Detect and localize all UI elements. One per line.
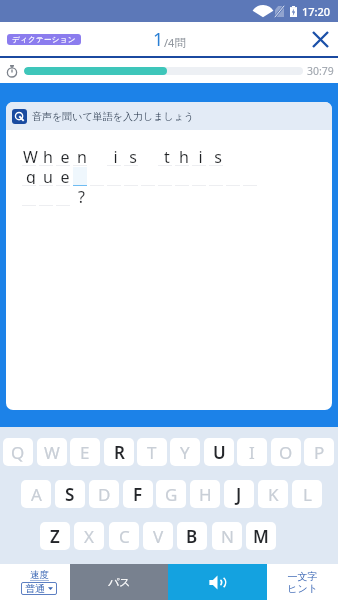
button[interactable]: V	[143, 522, 173, 550]
button[interactable]: Close	[306, 25, 334, 53]
button[interactable]: D	[89, 480, 119, 508]
button[interactable]: Play audio	[168, 564, 267, 600]
staticText: s	[214, 146, 222, 164]
staticText: h	[43, 146, 53, 164]
staticText: Z	[50, 525, 60, 548]
staticText: t	[164, 146, 170, 164]
button[interactable]: B	[177, 522, 207, 550]
staticText: X	[84, 525, 94, 548]
staticText: S	[65, 483, 75, 506]
staticText: F	[133, 483, 143, 506]
staticText: K	[268, 483, 279, 506]
button[interactable]: ディクテーション	[7, 34, 81, 45]
staticText: e	[60, 146, 70, 164]
staticText: /4問	[164, 35, 186, 50]
staticText: N	[221, 525, 234, 548]
button[interactable]: パス	[70, 564, 168, 600]
button[interactable]: E	[70, 438, 100, 466]
staticText: n	[77, 146, 87, 164]
button[interactable]: N	[212, 522, 242, 550]
button[interactable]: A	[21, 480, 51, 508]
staticText: u	[43, 166, 53, 184]
button[interactable]: S	[55, 480, 85, 508]
staticText: W	[23, 146, 38, 164]
staticText: Y	[180, 441, 190, 464]
button[interactable]: C	[109, 522, 139, 550]
button[interactable]: Z	[40, 522, 70, 550]
button[interactable]: G	[156, 480, 186, 508]
button[interactable]: J	[224, 480, 254, 508]
staticText: T	[147, 441, 157, 464]
staticText: J	[236, 483, 242, 506]
staticText: 30:79	[307, 64, 334, 78]
staticText: B	[186, 525, 198, 548]
staticText: W	[44, 441, 60, 464]
staticText: P	[314, 441, 325, 464]
staticText: L	[303, 483, 312, 506]
button[interactable]: X	[74, 522, 104, 550]
staticText: 17:20	[302, 4, 331, 19]
staticText: h	[179, 146, 189, 164]
button[interactable]: W	[37, 438, 67, 466]
staticText: D	[98, 483, 111, 506]
staticText: 速度	[30, 569, 49, 581]
staticText: E	[80, 441, 90, 464]
staticText: s	[129, 146, 137, 164]
staticText: 音声を聞いて単語を入力しましょう	[32, 110, 195, 123]
button[interactable]: R	[104, 438, 134, 466]
staticText: ディクテーション	[12, 35, 76, 44]
button[interactable]: H	[190, 480, 220, 508]
staticText: M	[253, 525, 269, 548]
staticText: Q	[11, 441, 25, 464]
button[interactable]: T	[137, 438, 167, 466]
staticText: U	[213, 441, 226, 464]
staticText: パス	[108, 575, 131, 589]
staticText: q	[26, 166, 36, 184]
button[interactable]: U	[204, 438, 234, 466]
staticText: 一文字 ヒント	[287, 570, 318, 595]
staticText: O	[279, 441, 293, 464]
button[interactable]: 一文字 ヒント	[267, 564, 338, 600]
button[interactable]: M	[246, 522, 276, 550]
button[interactable]: L	[292, 480, 322, 508]
staticText: R	[114, 441, 125, 464]
button[interactable]: O	[271, 438, 301, 466]
button[interactable]: Q	[3, 438, 33, 466]
staticText: i	[113, 146, 118, 164]
button[interactable]: P	[304, 438, 334, 466]
staticText: C	[119, 525, 130, 548]
staticText: G	[165, 483, 178, 506]
button[interactable]: Y	[170, 438, 200, 466]
staticText: H	[199, 483, 212, 506]
button[interactable]: F	[123, 480, 153, 508]
staticText: A	[31, 483, 42, 506]
staticText: 1	[153, 27, 164, 52]
staticText: V	[153, 525, 164, 548]
staticText: I	[249, 441, 255, 464]
staticText: i	[198, 146, 203, 164]
button[interactable]: K	[258, 480, 288, 508]
staticText: 普通	[25, 582, 45, 595]
staticText: ?	[78, 186, 85, 204]
button[interactable]: 速度	[0, 564, 70, 600]
staticText: e	[60, 166, 70, 184]
button[interactable]: I	[237, 438, 267, 466]
